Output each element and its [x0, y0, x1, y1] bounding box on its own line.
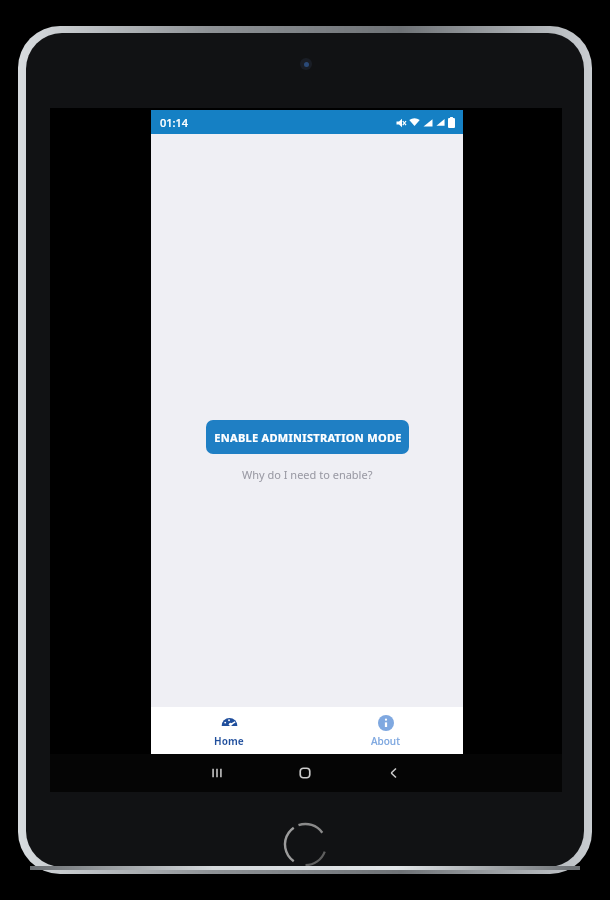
button[interactable]: Why do I need to enable?: [236, 464, 379, 485]
button[interactable]: Home: [291, 759, 319, 787]
button[interactable]: Back: [380, 759, 408, 787]
button[interactable]: Home button: [283, 822, 328, 867]
button[interactable]: ENABLE ADMINISTRATION MODE: [206, 420, 409, 454]
staticText: About: [371, 734, 400, 748]
staticText: Home: [214, 734, 244, 748]
staticText: 01:14: [160, 115, 189, 130]
staticText: Why do I need to enable?: [242, 467, 373, 482]
button[interactable]: Home: [151, 707, 307, 748]
button[interactable]: Recents: [203, 759, 231, 787]
button[interactable]: About: [307, 707, 463, 748]
staticText: ENABLE ADMINISTRATION MODE: [214, 430, 402, 445]
